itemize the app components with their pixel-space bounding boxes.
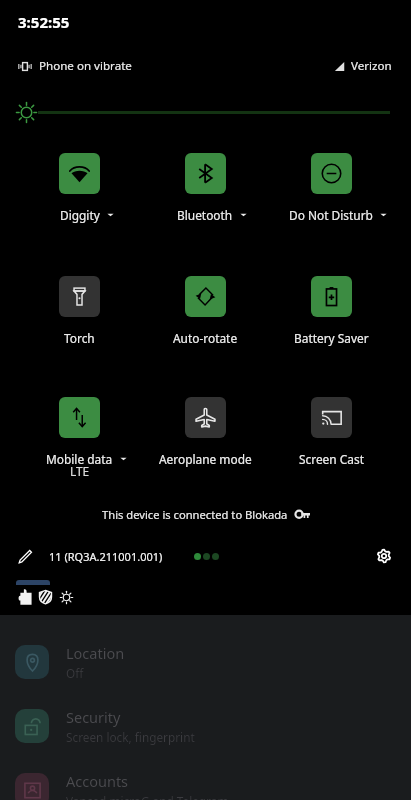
staticText: Off	[66, 665, 84, 681]
staticText: Torch	[64, 330, 95, 346]
staticText: Vanced microG and Telegram	[66, 793, 229, 800]
staticText: Battery Saver	[294, 330, 369, 346]
staticText: Phone on vibrate	[39, 58, 132, 74]
staticText: Verizon	[351, 58, 392, 74]
staticText: Screen lock, fingerprint	[66, 729, 195, 745]
staticText: Aeroplane mode	[159, 451, 252, 467]
button[interactable]: Edit tiles	[18, 549, 33, 564]
staticText: LTE	[70, 463, 90, 479]
button[interactable]: Aeroplane mode	[142, 397, 268, 467]
staticText: Security	[66, 707, 121, 727]
button[interactable]: Security	[15, 694, 411, 758]
staticText: 11 (RQ3A.211001.001)	[49, 549, 163, 564]
staticText: Screen Cast	[299, 451, 364, 467]
button[interactable]: Location	[15, 630, 411, 694]
button[interactable]: Battery Saver	[268, 276, 394, 346]
staticText: Location	[66, 643, 125, 663]
button[interactable]: Accounts	[15, 758, 411, 800]
staticText: Mobile data	[46, 451, 113, 467]
button[interactable]: Mobile data	[17, 397, 142, 483]
staticText: 3:52:55	[18, 12, 70, 32]
button[interactable]: Torch	[17, 276, 142, 346]
button[interactable]: Diggity	[17, 153, 142, 223]
staticText: Diggity	[60, 207, 100, 223]
button[interactable]: Screen Cast	[268, 397, 394, 467]
staticText: Bluetooth	[177, 207, 233, 223]
button[interactable]: This device is connected to Blokada	[0, 507, 411, 522]
staticText: This device is connected to Blokada	[102, 507, 288, 522]
button[interactable]: Auto-rotate	[142, 276, 268, 346]
button[interactable]: Bluetooth	[142, 153, 268, 223]
button[interactable]: Do Not Disturb	[268, 153, 394, 223]
staticText: Accounts	[66, 771, 129, 791]
staticText: Do Not Disturb	[289, 207, 373, 223]
staticText: Auto-rotate	[173, 330, 238, 346]
button[interactable]: Settings	[376, 548, 392, 564]
